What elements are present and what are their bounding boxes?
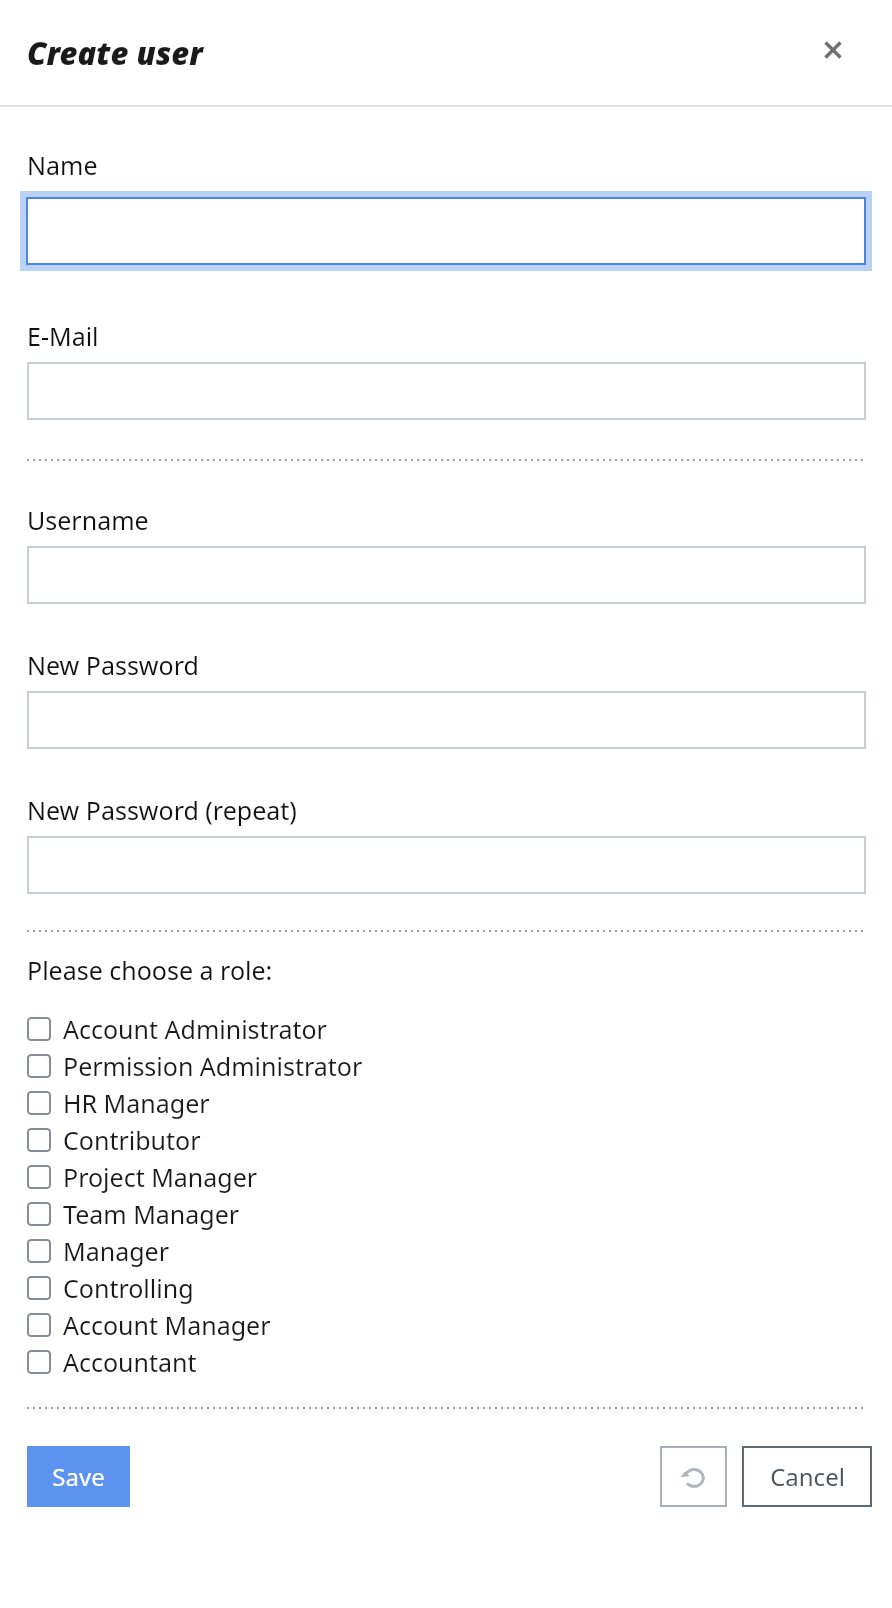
staticText: HR Manager [63, 1086, 210, 1120]
staticText: E-Mail [27, 319, 99, 353]
button[interactable]: Save [27, 1446, 130, 1507]
staticText: Contributor [63, 1123, 201, 1157]
button[interactable] [27, 691, 866, 749]
staticText: Controlling [63, 1271, 194, 1305]
button[interactable]: Contributor [0, 1121, 892, 1158]
staticText: Create user [27, 32, 203, 74]
staticText: Cancel [770, 1460, 845, 1493]
staticText: Username [27, 503, 149, 537]
staticText: Save [52, 1460, 105, 1493]
staticText: Permission Administrator [63, 1049, 363, 1083]
staticText: Account Manager [63, 1308, 271, 1342]
button[interactable]: Close [811, 28, 855, 72]
button[interactable]: Manager [0, 1232, 892, 1269]
button[interactable] [27, 546, 866, 604]
button[interactable]: Cancel [742, 1446, 872, 1507]
button[interactable]: Reset [660, 1446, 727, 1507]
staticText: Please choose a role: [27, 953, 273, 987]
button[interactable]: Account Manager [0, 1306, 892, 1343]
staticText: Manager [63, 1234, 169, 1268]
button[interactable]: Project Manager [0, 1158, 892, 1195]
button[interactable]: HR Manager [0, 1084, 892, 1121]
staticText: Accountant [63, 1345, 197, 1379]
button[interactable] [27, 362, 866, 420]
button[interactable]: Account Administrator [0, 1010, 892, 1047]
staticText: New Password [27, 648, 199, 682]
button[interactable]: Team Manager [0, 1195, 892, 1232]
staticText: Team Manager [63, 1197, 240, 1231]
staticText: Account Administrator [63, 1012, 327, 1046]
button[interactable]: Accountant [0, 1343, 892, 1380]
button[interactable]: Controlling [0, 1269, 892, 1306]
staticText: Name [27, 148, 98, 182]
button[interactable] [26, 197, 866, 265]
staticText: Project Manager [63, 1160, 258, 1194]
staticText: New Password (repeat) [27, 793, 297, 827]
button[interactable] [27, 836, 866, 894]
button[interactable]: Permission Administrator [0, 1047, 892, 1084]
